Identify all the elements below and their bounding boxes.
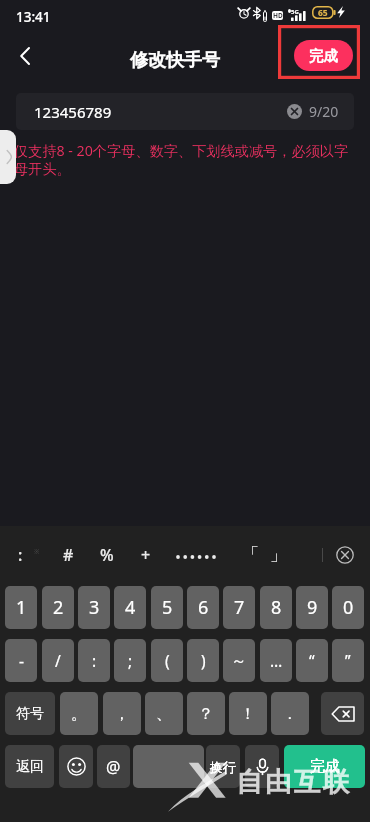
staticText: 修改快手号 bbox=[130, 49, 220, 72]
button[interactable]: 8 bbox=[260, 586, 292, 629]
staticText: ※ bbox=[34, 547, 40, 556]
staticText: ( bbox=[165, 650, 170, 671]
button[interactable]: : bbox=[78, 639, 110, 682]
button[interactable]: 。 bbox=[60, 692, 98, 735]
staticText: 完成 bbox=[309, 47, 338, 65]
staticText: 、 bbox=[156, 704, 172, 724]
button[interactable]: Backspace bbox=[321, 692, 364, 735]
button[interactable]: Space bbox=[133, 745, 204, 788]
staticText: 符号 bbox=[16, 705, 44, 723]
staticText: 5G bbox=[291, 8, 299, 16]
staticText: 。 bbox=[71, 704, 87, 724]
staticText: 」 bbox=[270, 544, 287, 565]
button[interactable]: 5 bbox=[151, 586, 183, 629]
button[interactable]: ？ bbox=[187, 692, 225, 735]
staticText: 7 bbox=[234, 595, 245, 620]
button[interactable]: Ellipsis bbox=[172, 526, 220, 584]
button[interactable]: Back bbox=[4, 35, 46, 77]
staticText: - bbox=[19, 650, 24, 671]
button[interactable]: 2 bbox=[42, 586, 74, 629]
button[interactable]: … bbox=[260, 639, 292, 682]
staticText: 2 bbox=[53, 595, 64, 620]
button[interactable]: ． bbox=[271, 692, 309, 735]
button[interactable]: 返回 bbox=[5, 745, 54, 788]
staticText: 6 bbox=[198, 595, 209, 620]
staticText: / bbox=[55, 650, 61, 671]
button[interactable]: + bbox=[127, 526, 165, 584]
staticText: # bbox=[63, 544, 74, 566]
button[interactable]: 6 bbox=[187, 586, 219, 629]
staticText: 5 bbox=[162, 595, 173, 620]
button[interactable]: 4 bbox=[114, 586, 146, 629]
staticText: 仅支持8 - 20个字母、数字、下划线或减号，必须以字 母开头。 bbox=[14, 141, 366, 178]
staticText: … bbox=[270, 650, 283, 671]
staticText: 换行 bbox=[210, 759, 236, 775]
staticText: 「 bbox=[242, 544, 259, 565]
button[interactable]: 123456789 bbox=[16, 93, 354, 130]
button[interactable]: / bbox=[42, 639, 74, 682]
button[interactable]: ; bbox=[114, 639, 146, 682]
button[interactable]: 0 bbox=[332, 586, 364, 629]
staticText: ～ bbox=[231, 651, 247, 671]
button[interactable]: - bbox=[5, 639, 37, 682]
button[interactable]: 符号 bbox=[5, 692, 55, 735]
button[interactable]: 」 bbox=[264, 526, 292, 584]
button[interactable]: 9 bbox=[296, 586, 328, 629]
staticText: HD bbox=[273, 11, 283, 20]
button[interactable]: # bbox=[49, 526, 87, 584]
button[interactable]: Hide keyboard bbox=[336, 546, 354, 564]
staticText: : bbox=[18, 544, 23, 566]
button[interactable]: 换行 bbox=[206, 745, 240, 788]
staticText: ！ bbox=[240, 704, 256, 724]
staticText: “ bbox=[309, 650, 315, 671]
button[interactable]: ， bbox=[103, 692, 141, 735]
button[interactable]: ” bbox=[332, 639, 364, 682]
button[interactable]: Back gesture bbox=[0, 130, 16, 184]
staticText: 9 bbox=[307, 595, 318, 620]
staticText: ) bbox=[201, 650, 206, 671]
staticText: 8 bbox=[271, 595, 282, 620]
staticText: ？ bbox=[198, 704, 214, 724]
staticText: 完成 bbox=[310, 757, 340, 776]
staticText: ; bbox=[128, 650, 133, 671]
button[interactable]: ) bbox=[187, 639, 219, 682]
staticText: ” bbox=[345, 650, 351, 671]
staticText: 返回 bbox=[16, 758, 44, 776]
staticText: 4 bbox=[125, 595, 136, 620]
button[interactable]: ！ bbox=[229, 692, 267, 735]
button[interactable]: 7 bbox=[223, 586, 255, 629]
staticText: 完成 bbox=[310, 757, 340, 776]
staticText: 0 bbox=[343, 595, 354, 620]
staticText: @ bbox=[106, 756, 121, 778]
staticText: 13:41 bbox=[16, 8, 51, 26]
staticText: 123456789 bbox=[34, 102, 112, 122]
button[interactable]: 完成 bbox=[294, 40, 353, 71]
staticText: + bbox=[141, 544, 151, 566]
button[interactable]: 「 bbox=[236, 526, 264, 584]
button[interactable]: ( bbox=[151, 639, 183, 682]
button[interactable]: 、 bbox=[145, 692, 183, 735]
staticText: 9/20 bbox=[309, 102, 339, 121]
staticText: 65 bbox=[318, 7, 328, 19]
button[interactable]: : bbox=[1, 526, 39, 584]
staticText: 1 bbox=[16, 595, 27, 620]
button[interactable]: Voice input bbox=[245, 745, 279, 788]
staticText: 自由互联 bbox=[236, 765, 352, 798]
button[interactable]: 1 bbox=[5, 586, 37, 629]
button[interactable]: @ bbox=[97, 745, 130, 788]
staticText: 3 bbox=[89, 595, 100, 620]
button[interactable]: ～ bbox=[223, 639, 255, 682]
button[interactable]: Emoji bbox=[59, 745, 93, 788]
button[interactable]: 完成 bbox=[284, 745, 365, 788]
button[interactable]: “ bbox=[296, 639, 328, 682]
staticText: 换行 bbox=[210, 759, 236, 775]
button[interactable]: Clear text bbox=[287, 104, 302, 119]
staticText: ， bbox=[114, 704, 130, 724]
staticText: % bbox=[100, 544, 114, 566]
staticText: : bbox=[92, 650, 97, 671]
staticText: ． bbox=[282, 704, 298, 724]
button[interactable]: 3 bbox=[78, 586, 110, 629]
button[interactable]: % bbox=[88, 526, 126, 584]
